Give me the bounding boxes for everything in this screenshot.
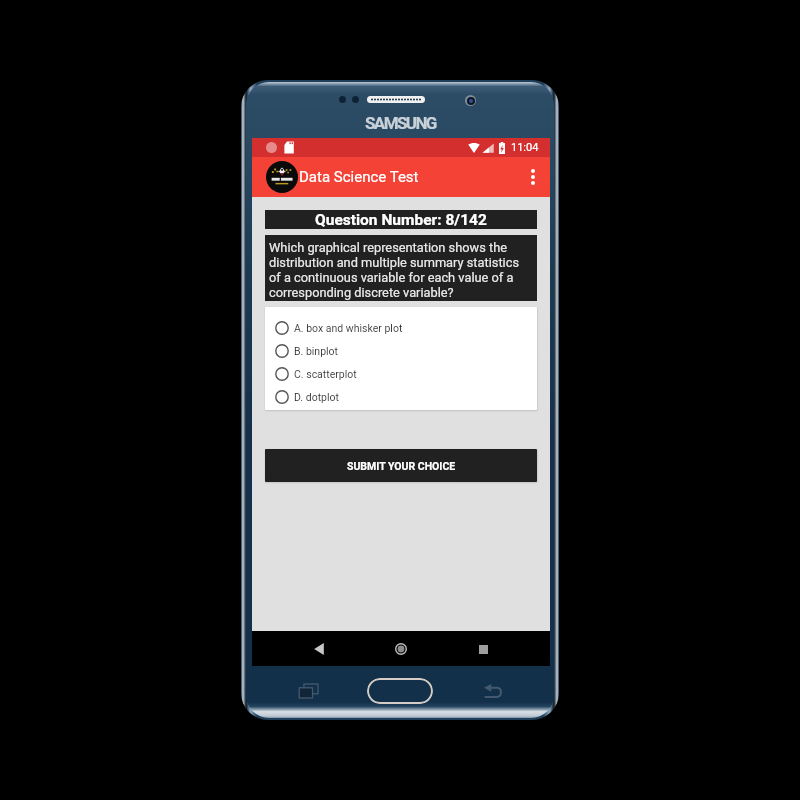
button[interactable]: Back — [483, 683, 502, 698]
staticText: Data Science Test — [299, 168, 419, 186]
staticText: C. scatterplot — [294, 368, 357, 380]
button[interactable]: Data Science logo — [266, 161, 298, 193]
staticText: A. box and whisker plot — [294, 322, 403, 334]
button[interactable]: C. scatterplot — [275, 362, 537, 385]
button[interactable]: A. box and whisker plot — [275, 316, 537, 339]
button[interactable]: Recents — [298, 683, 318, 698]
button[interactable]: SUBMIT YOUR CHOICE — [265, 449, 537, 482]
button[interactable]: Back — [306, 636, 332, 662]
button[interactable]: B. binplot — [275, 339, 537, 362]
staticText: D. dotplot — [294, 391, 339, 403]
button[interactable]: Recents — [470, 636, 496, 662]
staticText: Question Number: 8/142 — [315, 211, 487, 229]
button[interactable]: Home — [367, 678, 433, 704]
staticText: SAMSUNG — [365, 113, 436, 133]
staticText: Which graphical representation shows the… — [269, 240, 529, 300]
button[interactable]: More options — [520, 164, 546, 190]
staticText: B. binplot — [294, 345, 339, 357]
staticText: 11:04 — [511, 141, 539, 154]
button[interactable]: Home — [388, 636, 414, 662]
staticText: SUBMIT YOUR CHOICE — [347, 460, 456, 472]
button[interactable]: D. dotplot — [275, 385, 537, 408]
